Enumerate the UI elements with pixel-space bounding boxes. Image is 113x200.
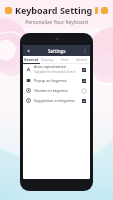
staticText: General — [24, 57, 38, 62]
staticText: Capitalize the first word of each senten… — [34, 70, 77, 75]
button[interactable]: Popup on keypress — [23, 75, 90, 85]
staticText: Personalize Your Keyboard — [25, 19, 88, 26]
button[interactable]: Sound — [73, 56, 90, 63]
button[interactable]: Auto capitalization — [23, 64, 90, 75]
button[interactable]: Auto capitalization toggle — [80, 66, 87, 73]
staticText: Display — [41, 57, 54, 62]
staticText: Auto capitalization — [34, 64, 67, 69]
staticText: Popup on keypress — [34, 78, 67, 83]
button[interactable]: More options — [81, 47, 88, 54]
button[interactable]: Vibrate on keypress — [23, 85, 90, 95]
button[interactable]: Suggestion on keypress toggle — [80, 97, 87, 104]
staticText: Suggestion on keypress — [34, 98, 75, 103]
staticText: Keyboard Setting — [15, 4, 93, 16]
button[interactable]: Display — [39, 56, 56, 63]
button[interactable]: Font — [56, 56, 73, 63]
staticText: Sound — [76, 57, 87, 62]
button[interactable]: Popup on keypress toggle — [80, 77, 87, 84]
button[interactable]: Back — [25, 47, 32, 54]
button[interactable]: Vibrate on keypress toggle — [80, 87, 87, 94]
staticText: Vibrate on keypress — [34, 88, 68, 93]
staticText: Settings — [48, 48, 66, 54]
staticText: Font — [61, 57, 69, 62]
button[interactable]: Suggestion on keypress — [23, 95, 90, 105]
button[interactable]: General — [23, 56, 39, 63]
